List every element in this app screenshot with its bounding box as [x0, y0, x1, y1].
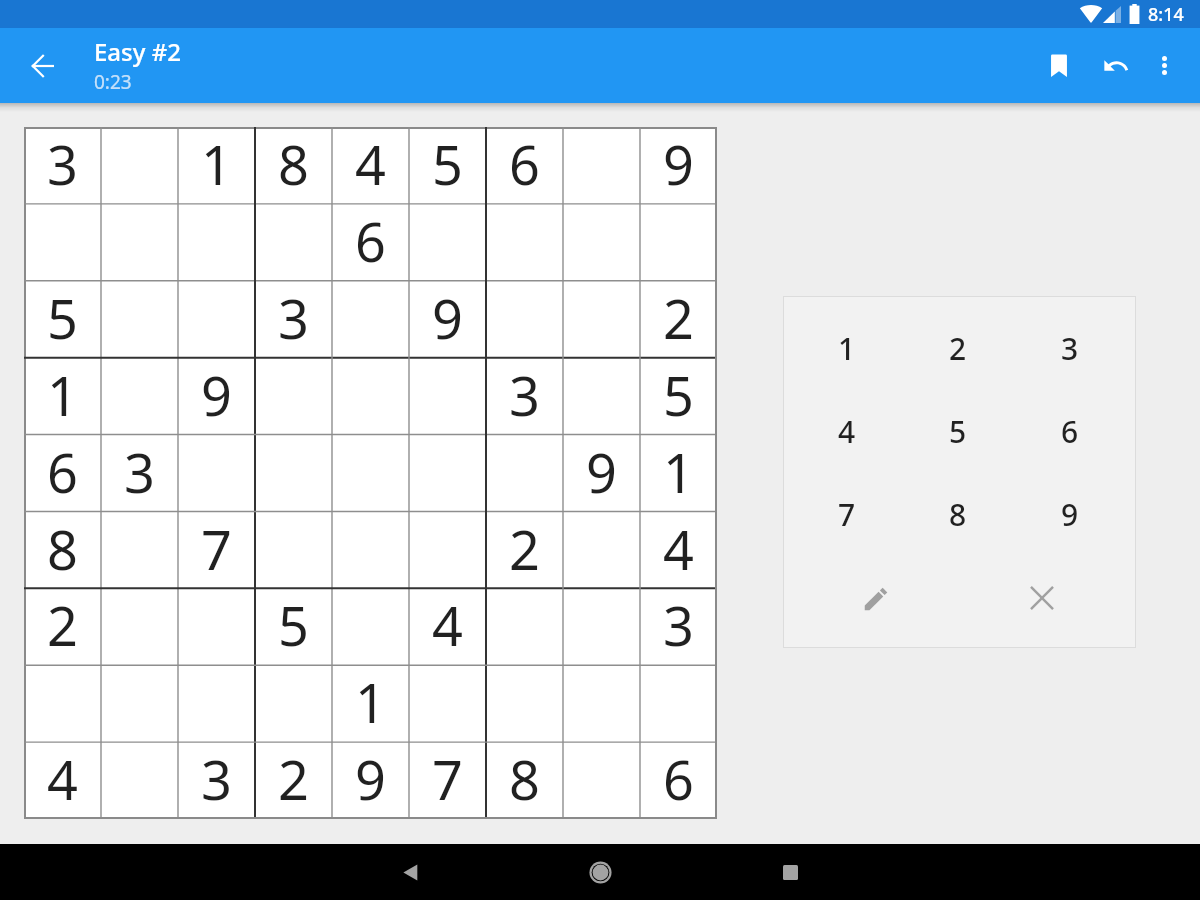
staticText: 1 [201, 127, 232, 201]
staticText: 6 [663, 742, 694, 816]
staticText: 9 [355, 742, 386, 816]
staticText: 2 [509, 512, 540, 586]
staticText: 9 [201, 358, 232, 432]
button[interactable]: 4 [640, 510, 717, 587]
staticText: 1 [47, 358, 78, 432]
staticText: 3 [47, 127, 78, 201]
staticText: 6 [509, 127, 540, 201]
button[interactable]: 3 [24, 125, 101, 202]
button[interactable]: 6 [332, 202, 409, 279]
button[interactable]: 6 [486, 125, 563, 202]
staticText: 6 [355, 204, 386, 278]
button[interactable]: 1 [178, 125, 255, 202]
staticText: 1 [838, 328, 856, 369]
button[interactable]: Clear cell [1006, 568, 1078, 628]
button[interactable]: 5 [640, 356, 717, 433]
staticText: 3 [278, 281, 309, 355]
button[interactable]: 1 [640, 433, 717, 510]
staticText: 8:14 [1148, 2, 1184, 27]
staticText: 5 [949, 411, 967, 452]
staticText: 4 [47, 742, 78, 816]
staticText: 9 [663, 127, 694, 201]
staticText: 3 [1061, 328, 1079, 369]
button[interactable]: 9 [178, 356, 255, 433]
button[interactable]: 4 [332, 125, 409, 202]
staticText: 6 [47, 435, 78, 509]
staticText: 2 [663, 281, 694, 355]
button[interactable]: 3 [101, 433, 178, 510]
staticText: 4 [355, 127, 386, 201]
button[interactable]: 2 [255, 740, 332, 817]
button[interactable]: Recent apps [762, 844, 818, 900]
button[interactable]: 8 [912, 478, 1004, 550]
button[interactable]: Home [572, 844, 628, 900]
button[interactable]: 5 [255, 586, 332, 663]
staticText: 7 [838, 494, 856, 535]
button[interactable]: 2 [640, 279, 717, 356]
button[interactable]: Pencil notes [840, 569, 912, 629]
staticText: 1 [663, 435, 694, 509]
button[interactable]: 8 [255, 125, 332, 202]
button[interactable]: 4 [24, 740, 101, 817]
staticText: 3 [663, 588, 694, 662]
button[interactable]: Navigate up [19, 42, 67, 90]
button[interactable]: 2 [912, 312, 1004, 384]
button[interactable]: 6 [640, 740, 717, 817]
staticText: 8 [278, 127, 309, 201]
staticText: 5 [278, 588, 309, 662]
button[interactable]: 9 [640, 125, 717, 202]
staticText: 4 [663, 512, 694, 586]
staticText: 7 [432, 742, 463, 816]
staticText: 3 [509, 358, 540, 432]
staticText: 9 [1061, 494, 1079, 535]
button[interactable]: 3 [640, 586, 717, 663]
staticText: 4 [432, 588, 463, 662]
button[interactable]: 9 [332, 740, 409, 817]
button[interactable]: 1 [801, 312, 893, 384]
button[interactable]: 8 [486, 740, 563, 817]
staticText: 3 [124, 435, 155, 509]
button[interactable]: 8 [24, 510, 101, 587]
staticText: 8 [509, 742, 540, 816]
staticText: 2 [47, 588, 78, 662]
staticText: 5 [47, 281, 78, 355]
staticText: 5 [432, 127, 463, 201]
staticText: 7 [201, 512, 232, 586]
button[interactable]: 7 [178, 510, 255, 587]
staticText: 1 [355, 665, 386, 739]
staticText: 9 [432, 281, 463, 355]
button[interactable]: Undo [1092, 42, 1140, 90]
button[interactable]: 5 [409, 125, 486, 202]
button[interactable]: 3 [1024, 312, 1116, 384]
button[interactable]: More options [1140, 41, 1188, 89]
button[interactable]: 6 [24, 433, 101, 510]
staticText: Easy #2 [94, 35, 181, 68]
button[interactable]: 9 [409, 279, 486, 356]
staticText: 8 [949, 494, 967, 535]
button[interactable]: 6 [1024, 395, 1116, 467]
button[interactable]: 3 [178, 740, 255, 817]
button[interactable]: 4 [801, 395, 893, 467]
button[interactable]: 1 [332, 663, 409, 740]
staticText: 5 [663, 358, 694, 432]
button[interactable]: 3 [255, 279, 332, 356]
button[interactable]: 5 [912, 395, 1004, 467]
button[interactable]: 7 [801, 478, 893, 550]
staticText: 6 [1061, 411, 1079, 452]
button[interactable]: 3 [486, 356, 563, 433]
button[interactable]: 1 [24, 356, 101, 433]
button[interactable]: 4 [409, 586, 486, 663]
staticText: 9 [586, 435, 617, 509]
button[interactable]: 9 [1024, 478, 1116, 550]
staticText: 2 [278, 742, 309, 816]
staticText: 0:23 [94, 69, 132, 95]
staticText: 2 [949, 328, 967, 369]
button[interactable]: 9 [563, 433, 640, 510]
button[interactable]: Bookmark [1035, 41, 1083, 89]
button[interactable]: 7 [409, 740, 486, 817]
button[interactable]: 2 [24, 586, 101, 663]
button[interactable]: 5 [24, 279, 101, 356]
button[interactable]: 2 [486, 510, 563, 587]
button[interactable]: Back [382, 844, 438, 900]
staticText: 4 [838, 411, 856, 452]
